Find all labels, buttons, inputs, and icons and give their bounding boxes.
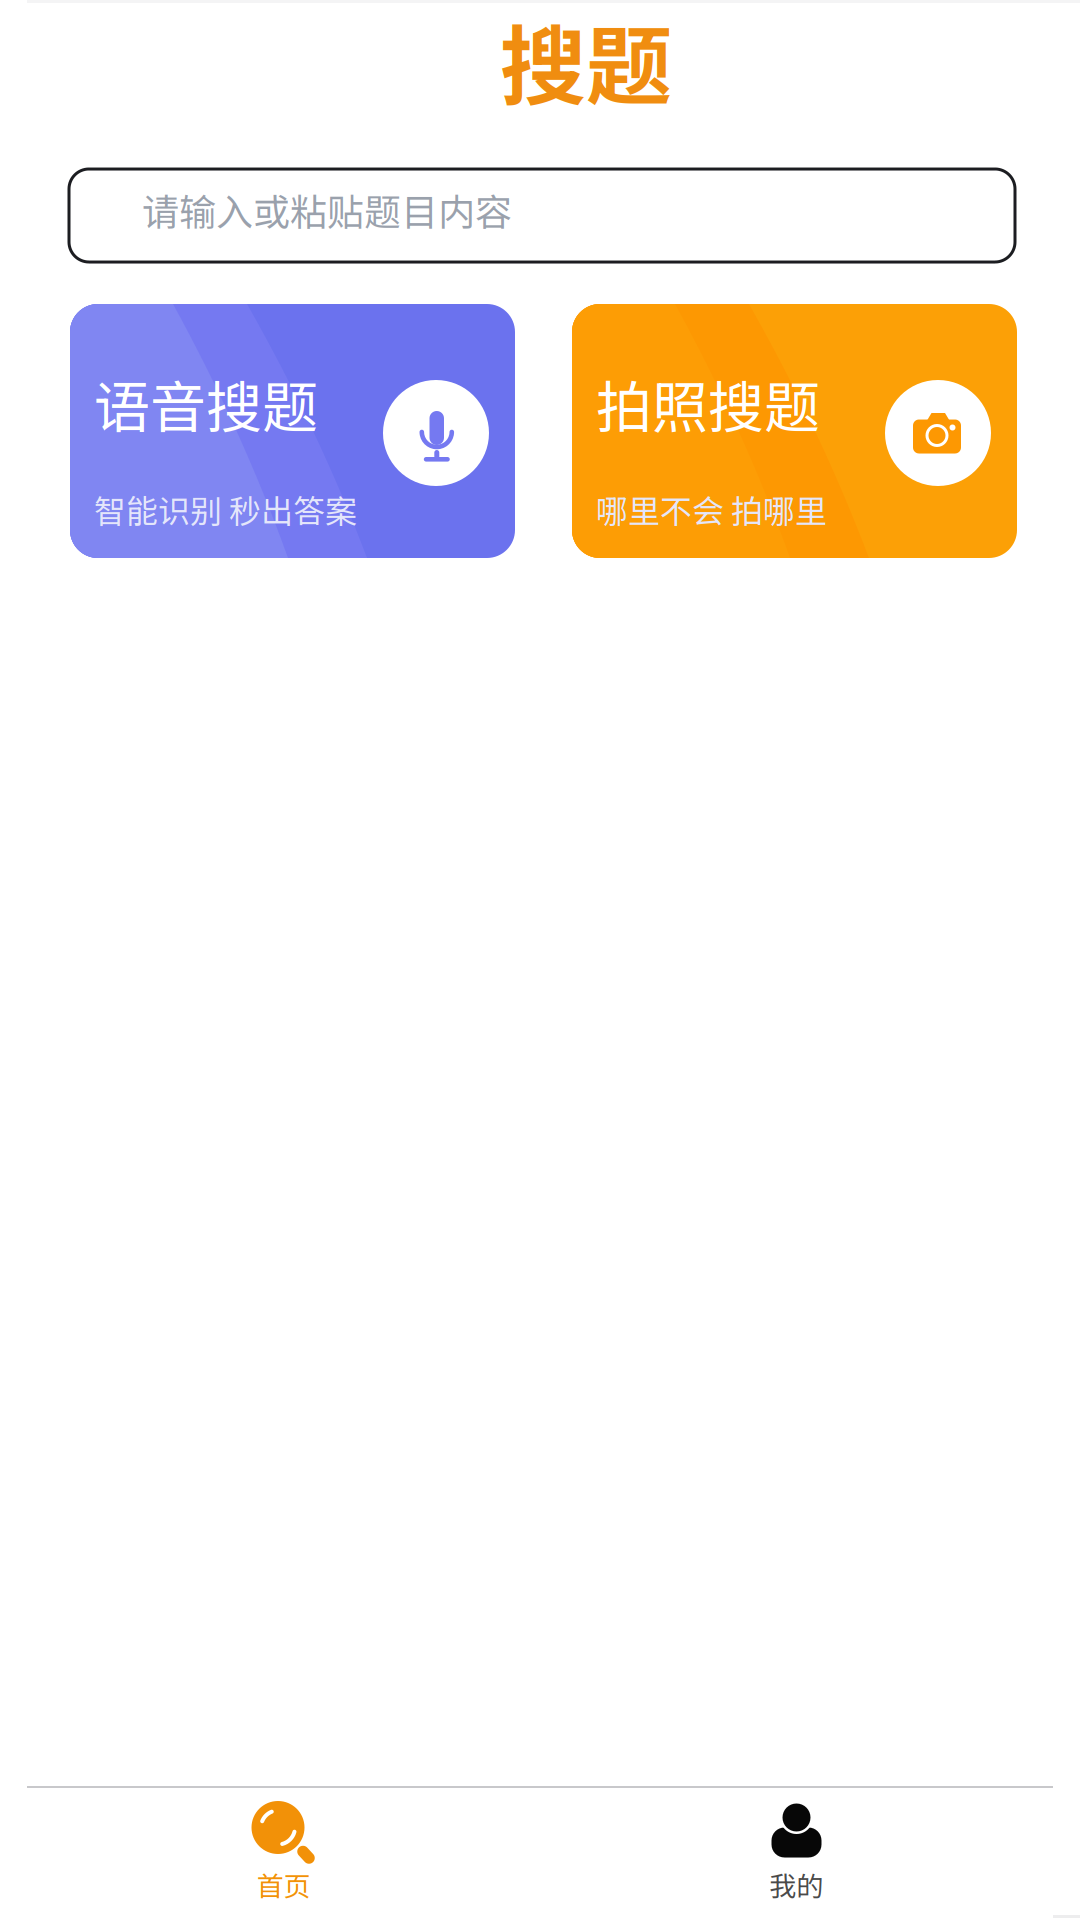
staticText: 哪里不会 拍哪里	[596, 486, 827, 532]
staticText: 语音搜题	[94, 363, 318, 444]
staticText: 搜题	[500, 0, 672, 122]
staticText: 我的	[769, 1865, 823, 1904]
button[interactable]: 语音搜题	[70, 304, 515, 558]
staticText: 首页	[256, 1865, 310, 1904]
button[interactable]: 我的	[540, 1788, 1053, 1920]
staticText: 拍照搜题	[596, 363, 820, 444]
staticText: 智能识别 秒出答案	[94, 486, 357, 532]
button[interactable]: 拍照搜题	[572, 304, 1017, 558]
staticText: 请输入或粘贴题目内容	[142, 183, 512, 236]
button[interactable]: 首页	[27, 1788, 540, 1920]
